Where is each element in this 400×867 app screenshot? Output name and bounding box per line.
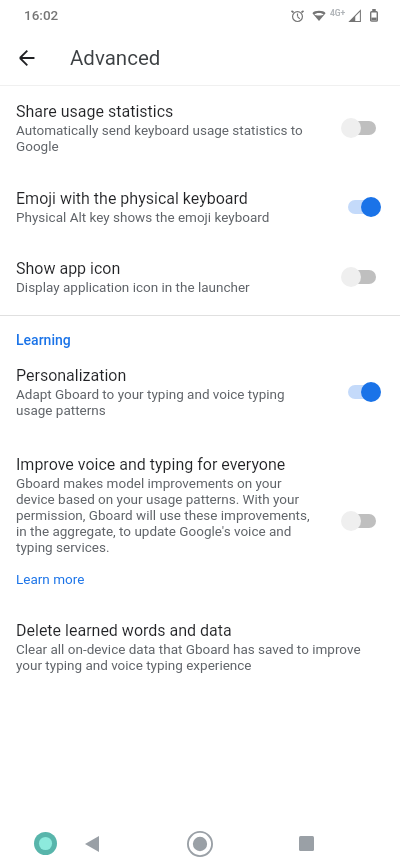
staticText: Emoji with the physical keyboard xyxy=(16,189,248,208)
button[interactable]: Recent apps xyxy=(282,820,330,867)
staticText: Learning xyxy=(16,332,71,348)
button[interactable]: Learn more xyxy=(16,571,85,587)
button[interactable]: Home xyxy=(176,820,224,867)
staticText: Advanced xyxy=(70,46,161,70)
staticText: 4G+ xyxy=(330,8,346,18)
button[interactable]: Improve voice and typing for everyone xyxy=(0,455,400,587)
staticText: Delete learned words and data xyxy=(16,621,232,640)
staticText: 16:02 xyxy=(24,7,59,23)
button[interactable]: Share usage statistics xyxy=(0,102,400,154)
staticText: Improve voice and typing for everyone xyxy=(16,455,286,474)
button[interactable]: Disabled xyxy=(342,261,384,293)
button[interactable]: Enabled xyxy=(342,376,384,408)
button[interactable]: Disabled xyxy=(342,112,384,144)
staticText: Learn more xyxy=(16,571,85,587)
button[interactable]: Enabled xyxy=(342,191,384,223)
staticText: Clear all on-device data that Gboard has… xyxy=(16,641,384,673)
staticText: Automatically send keyboard usage statis… xyxy=(16,122,320,154)
staticText: Show app icon xyxy=(16,259,121,278)
button[interactable]: Delete learned words and data xyxy=(0,621,400,673)
button[interactable]: Learning xyxy=(16,332,400,348)
button[interactable]: Disabled xyxy=(342,505,384,537)
staticText: Display application icon in the launcher xyxy=(16,279,250,295)
button[interactable]: Accessibility menu xyxy=(21,820,69,867)
staticText: Personalization xyxy=(16,366,127,385)
staticText: Share usage statistics xyxy=(16,102,174,121)
button[interactable]: Personalization xyxy=(0,366,400,418)
staticText: Gboard makes model improvements on your … xyxy=(16,475,320,555)
button[interactable]: Navigate up xyxy=(3,34,51,82)
staticText: Physical Alt key shows the emoji keyboar… xyxy=(16,209,270,225)
staticText: Adapt Gboard to your typing and voice ty… xyxy=(16,386,320,418)
button[interactable]: Back xyxy=(68,820,116,867)
button[interactable]: Emoji with the physical keyboard xyxy=(0,189,400,225)
button[interactable]: Show app icon xyxy=(0,259,400,295)
